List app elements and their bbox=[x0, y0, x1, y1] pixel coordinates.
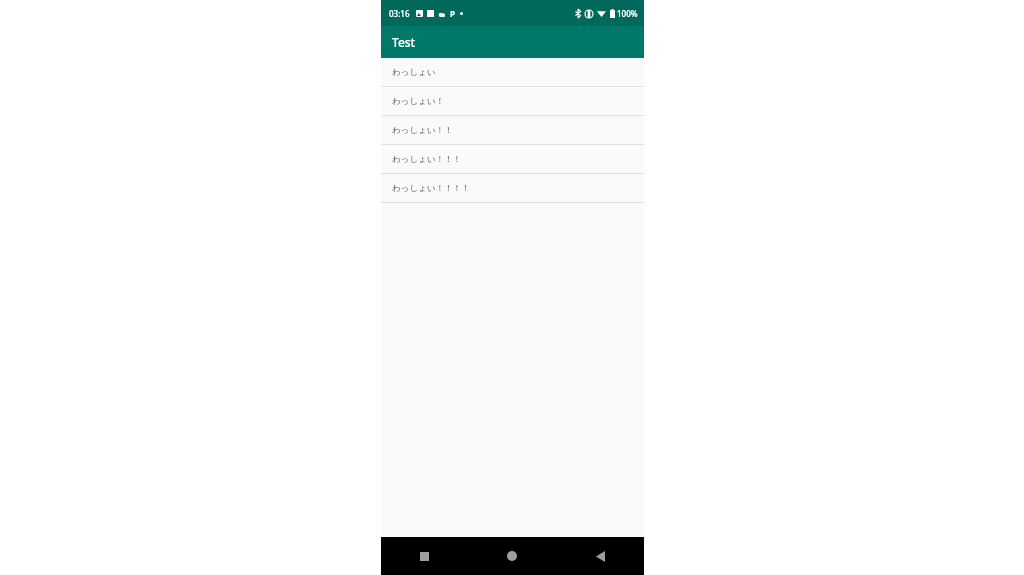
button[interactable]: わっしょい！！！ bbox=[381, 145, 644, 173]
staticText: わっしょい！ bbox=[392, 96, 444, 107]
button[interactable]: Home bbox=[468, 537, 556, 575]
staticText: Test bbox=[392, 34, 416, 50]
button[interactable]: わっしょい bbox=[381, 58, 644, 86]
button[interactable]: わっしょい！！ bbox=[381, 116, 644, 144]
staticText: わっしょい！！！ bbox=[392, 154, 461, 165]
button[interactable]: わっしょい！！！！ bbox=[381, 174, 644, 202]
button[interactable]: Recent apps bbox=[381, 537, 468, 575]
staticText: 100% bbox=[617, 8, 638, 19]
staticText: P bbox=[450, 8, 455, 19]
button[interactable]: わっしょい！ bbox=[381, 87, 644, 115]
button[interactable]: Back bbox=[556, 537, 644, 575]
staticText: わっしょい！！！！ bbox=[392, 183, 470, 194]
staticText: 03:16 bbox=[389, 8, 410, 19]
staticText: わっしょい！！ bbox=[392, 125, 453, 136]
staticText: わっしょい bbox=[392, 67, 436, 78]
